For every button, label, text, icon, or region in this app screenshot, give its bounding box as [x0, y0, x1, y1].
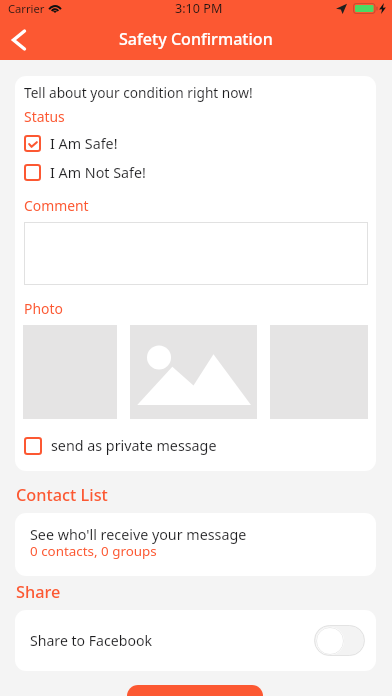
- button[interactable]: Photo: [130, 325, 257, 419]
- staticText: Status: [24, 107, 65, 126]
- button[interactable]: I Am Safe!: [24, 134, 118, 153]
- staticText: 3:10 PM: [175, 0, 223, 17]
- button[interactable]: I Am Not Safe!: [24, 163, 146, 182]
- staticText: Photo: [24, 299, 63, 318]
- staticText: 0 contacts, 0 groups: [30, 542, 157, 560]
- staticText: I Am Not Safe!: [50, 163, 146, 182]
- button[interactable]: Share to Facebook toggle: [314, 625, 365, 656]
- staticText: send as private message: [51, 436, 217, 455]
- button[interactable]: [24, 222, 368, 285]
- button[interactable]: Back: [1, 21, 37, 59]
- staticText: I Am Safe!: [50, 134, 118, 153]
- staticText: Contact List: [16, 484, 108, 506]
- staticText: Carrier: [8, 1, 45, 16]
- staticText: Comment: [24, 196, 89, 215]
- staticText: Share to Facebook: [30, 631, 152, 650]
- button[interactable]: See who'll receive your message: [15, 513, 376, 576]
- staticText: Safety Confirmation: [119, 28, 273, 50]
- button[interactable]: send as private message: [24, 436, 217, 455]
- button[interactable]: Send: [127, 685, 263, 696]
- staticText: Tell about your condition right now!: [24, 83, 253, 102]
- staticText: Share: [16, 581, 61, 603]
- staticText: See who'll receive your message: [30, 525, 247, 544]
